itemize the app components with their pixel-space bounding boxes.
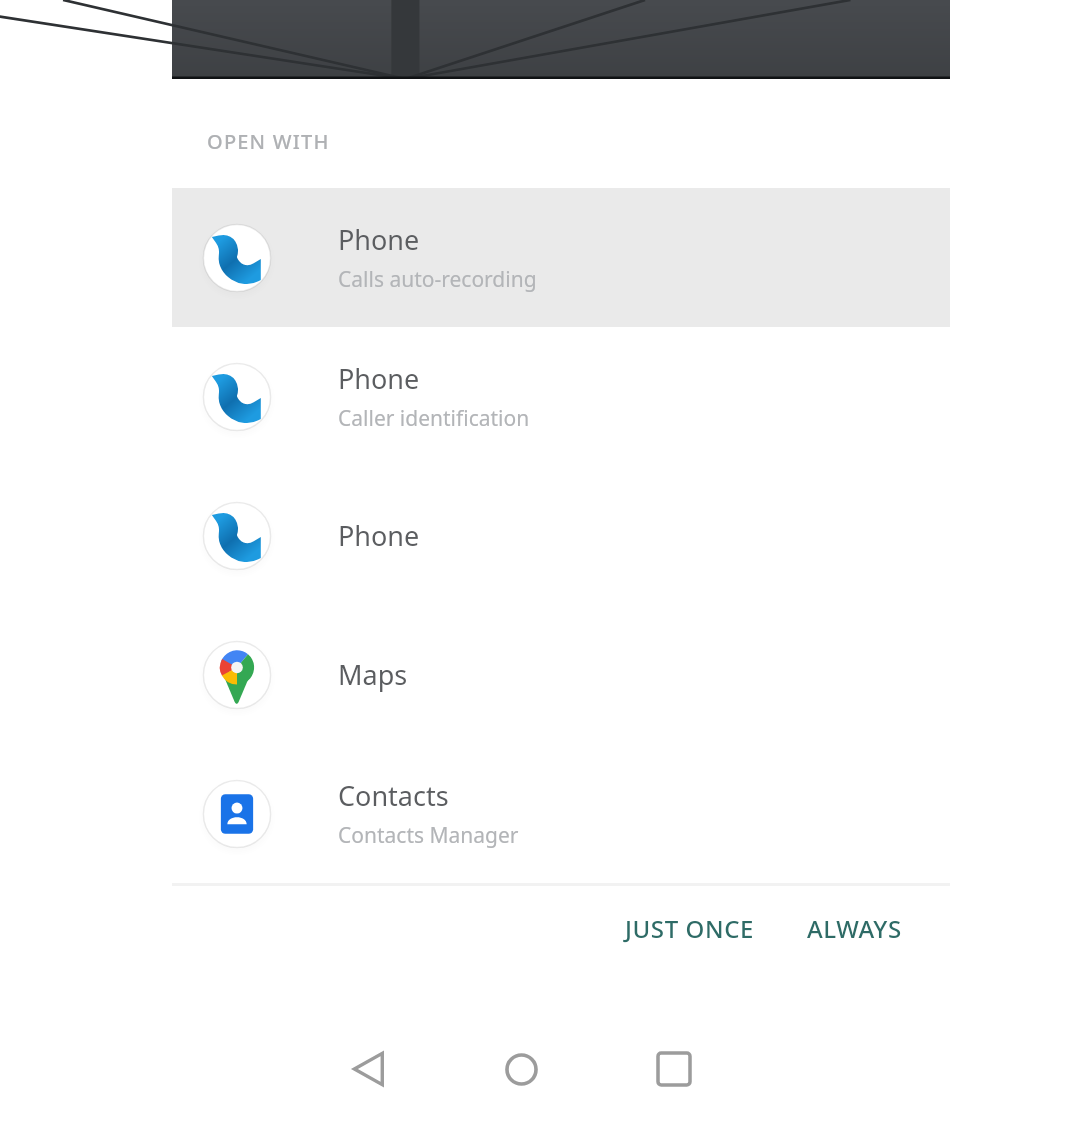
button[interactable]: Maps xyxy=(172,605,950,744)
button[interactable]: Phone xyxy=(172,466,950,605)
staticText: Contacts xyxy=(338,777,449,814)
staticText: JUST ONCE xyxy=(625,912,755,945)
staticText: ALWAYS xyxy=(807,912,902,945)
staticText: Maps xyxy=(338,656,408,693)
staticText: OPEN WITH xyxy=(207,128,330,155)
staticText: Calls auto-recording xyxy=(338,265,537,294)
button[interactable]: Phone xyxy=(172,327,950,466)
staticText: Phone xyxy=(338,360,420,397)
button[interactable]: Back xyxy=(309,1010,427,1128)
button[interactable]: Recent apps xyxy=(615,1010,733,1128)
button[interactable]: Home xyxy=(462,1010,580,1128)
staticText: Contacts Manager xyxy=(338,821,519,850)
staticText: Phone xyxy=(338,221,420,258)
button[interactable]: JUST ONCE xyxy=(615,900,765,957)
button[interactable]: Contacts xyxy=(172,744,950,883)
staticText: Caller identification xyxy=(338,404,530,433)
staticText: Phone xyxy=(338,517,420,554)
button[interactable]: Phone xyxy=(172,188,950,327)
button[interactable]: ALWAYS xyxy=(797,900,912,957)
